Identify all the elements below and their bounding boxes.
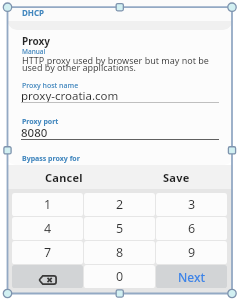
button[interactable]: 1 [12,193,83,216]
staticText: Next [178,269,206,285]
button[interactable]: Next [156,265,227,288]
staticText: 7 [44,244,52,261]
button[interactable]: 2 [84,193,155,216]
staticText: 6 [188,220,196,237]
staticText: Manual [22,47,46,56]
staticText: proxy-croatia.com [21,88,119,104]
staticText: Save [163,170,190,185]
button[interactable]: 3 [156,193,227,216]
staticText: 9 [188,244,196,261]
button[interactable]: 5 [84,217,155,240]
staticText: 1 [44,196,52,213]
staticText: Bypass proxy for [22,154,80,164]
button[interactable]: 0 [84,265,155,288]
button[interactable]: Backspace [12,265,83,288]
button[interactable]: 6 [156,217,227,240]
button[interactable]: 8 [84,241,155,264]
button[interactable]: Save [120,165,233,189]
staticText: 8 [116,244,124,261]
button[interactable]: 9 [156,241,227,264]
staticText: Proxy host name [22,81,79,91]
staticText: HTTP proxy used by browser but may not b… [22,54,209,74]
button[interactable]: Cancel [7,165,120,189]
staticText: 8080 [21,125,48,141]
staticText: 2 [116,196,124,213]
staticText: 0 [116,268,124,285]
staticText: DHCP [22,7,45,18]
staticText: 5 [116,220,124,237]
staticText: 3 [188,196,196,213]
staticText: Proxy port [22,117,59,127]
button[interactable]: 4 [12,217,83,240]
staticText: Proxy [22,34,51,48]
staticText: 4 [44,220,52,237]
button[interactable]: 7 [12,241,83,264]
staticText: Cancel [45,170,83,185]
